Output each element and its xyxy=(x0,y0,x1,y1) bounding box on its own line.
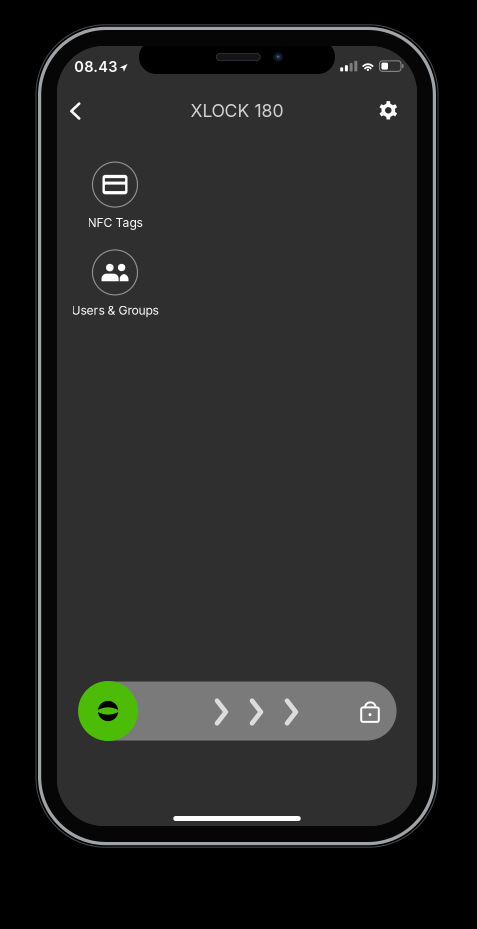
staticText: Users & Groups xyxy=(71,303,158,318)
button[interactable]: NFC Tags xyxy=(30,162,200,230)
button[interactable]: Users & Groups xyxy=(30,250,200,318)
staticText: NFC Tags xyxy=(87,215,142,230)
button[interactable]: Back xyxy=(59,92,91,130)
staticText: XLOCK 180 xyxy=(190,100,283,121)
button[interactable]: Settings xyxy=(368,91,409,130)
button[interactable]: Slide to unlock xyxy=(79,681,397,740)
staticText: 08.43 xyxy=(74,58,117,76)
